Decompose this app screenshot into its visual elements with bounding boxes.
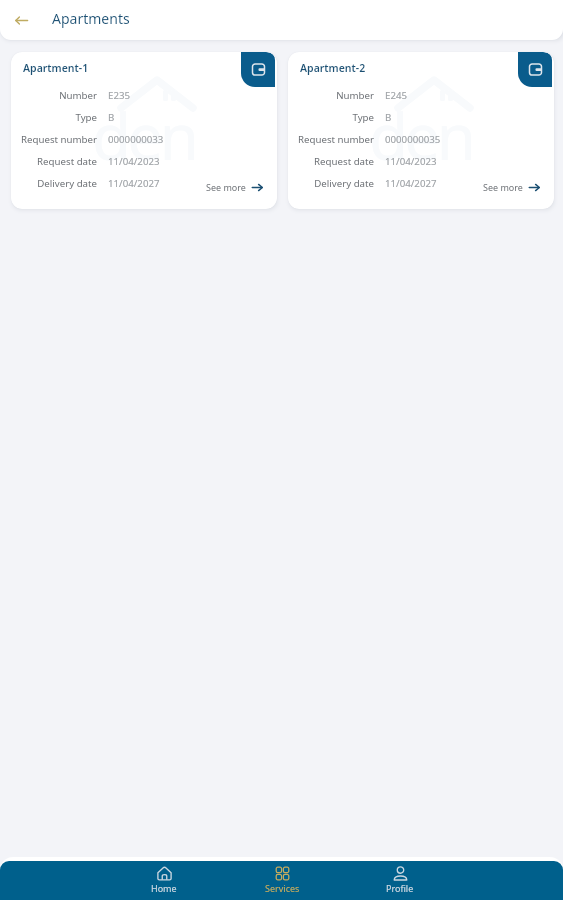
staticText: E235 bbox=[108, 89, 131, 102]
staticText: Home bbox=[151, 882, 177, 894]
staticText: See more bbox=[206, 181, 246, 193]
staticText: Delivery date bbox=[11, 177, 97, 190]
staticText: B bbox=[385, 111, 392, 124]
staticText: Delivery date bbox=[288, 177, 374, 190]
staticText: Apartment-2 bbox=[300, 61, 366, 75]
staticText: Request number bbox=[288, 133, 374, 146]
staticText: Type bbox=[288, 111, 374, 124]
button[interactable]: Open apartment bbox=[241, 52, 275, 87]
button[interactable]: Profile bbox=[341, 861, 459, 900]
button[interactable]: Back bbox=[6, 5, 36, 35]
staticText: Apartments bbox=[52, 9, 130, 28]
staticText: B bbox=[108, 111, 115, 124]
staticText: 0000000035 bbox=[385, 133, 441, 146]
button[interactable]: Home bbox=[105, 861, 223, 900]
staticText: Type bbox=[11, 111, 97, 124]
button[interactable]: See more bbox=[206, 181, 263, 193]
staticText: Request date bbox=[288, 155, 374, 168]
staticText: Profile bbox=[386, 882, 414, 894]
staticText: E245 bbox=[385, 89, 408, 102]
button[interactable]: Services bbox=[223, 861, 341, 900]
button[interactable]: See more bbox=[483, 181, 540, 193]
staticText: Number bbox=[288, 89, 374, 102]
staticText: 11/04/2023 bbox=[385, 155, 437, 168]
staticText: See more bbox=[483, 181, 523, 193]
staticText: 11/04/2027 bbox=[385, 177, 437, 190]
staticText: 0000000033 bbox=[108, 133, 164, 146]
button[interactable]: Open apartment bbox=[518, 52, 552, 87]
staticText: Services bbox=[265, 882, 300, 894]
staticText: 11/04/2027 bbox=[108, 177, 160, 190]
staticText: Apartment-1 bbox=[23, 61, 89, 75]
staticText: Number bbox=[11, 89, 97, 102]
staticText: Request date bbox=[11, 155, 97, 168]
staticText: den bbox=[369, 92, 473, 179]
staticText: 11/04/2023 bbox=[108, 155, 160, 168]
staticText: den bbox=[92, 92, 196, 179]
staticText: Request number bbox=[11, 133, 97, 146]
